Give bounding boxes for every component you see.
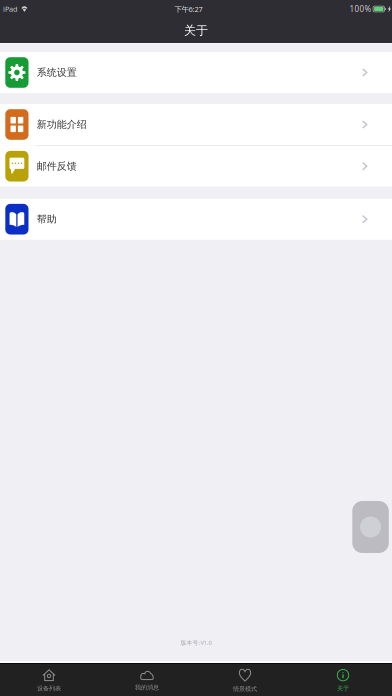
staticText: 关于 xyxy=(184,23,208,38)
button[interactable]: 帮助 xyxy=(0,199,392,240)
button[interactable]: 系统设置 xyxy=(0,52,392,93)
button[interactable]: 设备列表 xyxy=(0,664,98,696)
staticText: 帮助 xyxy=(37,213,57,225)
staticText: iPad xyxy=(3,4,18,14)
staticText: 设备列表 xyxy=(37,685,61,692)
staticText: 下午6:27 xyxy=(174,4,202,14)
button[interactable]: AssistiveTouch xyxy=(352,501,389,553)
staticText: 我的消息 xyxy=(135,684,159,691)
staticText: 版本号:V1.0 xyxy=(180,639,211,646)
button[interactable]: 邮件反馈 xyxy=(0,146,392,187)
staticText: 新功能介绍 xyxy=(37,118,87,131)
button[interactable]: 关于 xyxy=(294,664,392,696)
button[interactable]: 新功能介绍 xyxy=(0,104,392,145)
staticText: 100% xyxy=(350,4,372,14)
staticText: 关于 xyxy=(337,685,349,692)
staticText: 系统设置 xyxy=(37,66,77,79)
button[interactable]: 情景模式 xyxy=(196,664,294,696)
staticText: 邮件反馈 xyxy=(37,160,77,172)
staticText: 情景模式 xyxy=(233,685,257,693)
button[interactable]: 我的消息 xyxy=(98,664,196,696)
